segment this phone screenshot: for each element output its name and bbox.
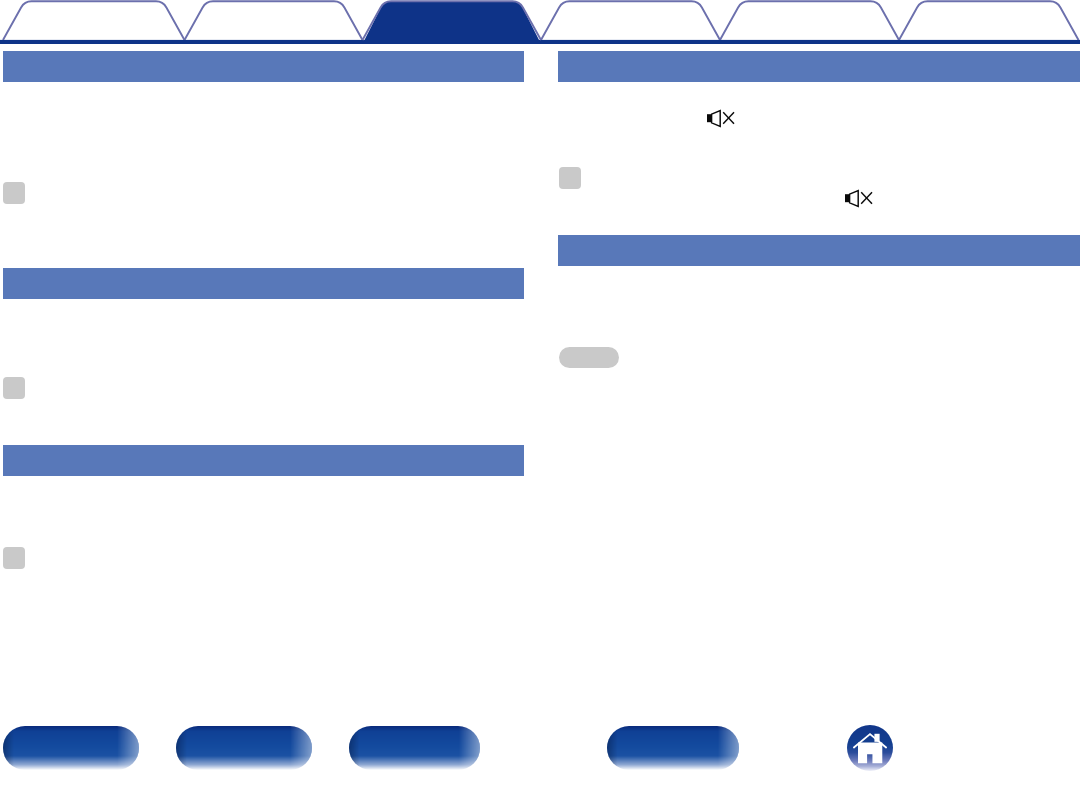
button[interactable]: Checkbox [3, 377, 25, 399]
button[interactable]: Checkbox [3, 182, 25, 204]
button[interactable]: Button [176, 726, 312, 770]
button[interactable]: Tab 6 [899, 0, 1079, 44]
button[interactable]: Tab 1 [3, 0, 185, 44]
button[interactable]: Chip [559, 347, 619, 368]
button[interactable]: Button [607, 726, 739, 770]
button[interactable]: Button [349, 726, 480, 770]
button[interactable]: Button [3, 726, 139, 770]
button[interactable]: Tab 4 [541, 0, 720, 44]
button[interactable]: Tab 3 [363, 0, 542, 44]
button[interactable]: Tab 5 [720, 0, 899, 44]
button[interactable]: Tab 2 [185, 0, 363, 44]
button[interactable]: Checkbox [559, 167, 581, 189]
button[interactable]: Checkbox [3, 547, 25, 569]
button[interactable]: Home [847, 725, 893, 771]
